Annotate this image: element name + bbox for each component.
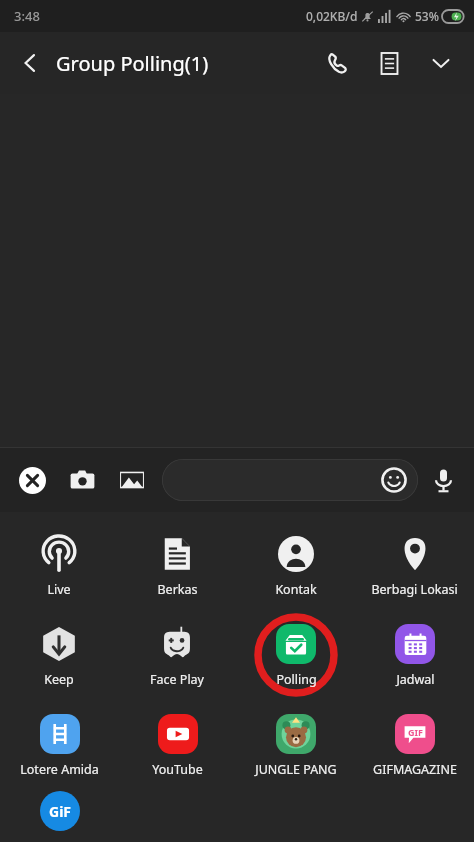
staticText: YouTube xyxy=(152,761,203,778)
staticText: Jadwal xyxy=(396,671,435,688)
button[interactable]: Call xyxy=(316,42,358,84)
button[interactable]: GIF xyxy=(355,700,474,790)
staticText: Lotere Amida xyxy=(20,761,99,778)
staticText: JUNGLE PANG xyxy=(255,761,337,778)
staticText: Polling xyxy=(276,671,317,688)
button[interactable]: Emoji xyxy=(162,459,418,501)
staticText: GIF xyxy=(408,726,423,738)
button[interactable]: Face Play xyxy=(118,610,236,700)
button[interactable]: Lotere Amida xyxy=(0,700,118,790)
button[interactable]: Berbagi Lokasi xyxy=(355,520,474,610)
staticText: Face Play xyxy=(150,671,204,688)
button[interactable]: Camera xyxy=(60,458,104,502)
button[interactable]: Gallery xyxy=(110,458,154,502)
staticText: GIFMAGAZINE xyxy=(373,761,457,778)
button[interactable]: JUNGLE PANG xyxy=(236,700,355,790)
button[interactable]: Keep xyxy=(0,610,118,700)
button[interactable]: Close xyxy=(10,458,54,502)
staticText: GiF xyxy=(49,802,72,821)
button[interactable]: Berkas xyxy=(118,520,236,610)
button[interactable]: Menu xyxy=(368,42,410,84)
staticText: Kontak xyxy=(275,581,317,598)
button[interactable]: Live xyxy=(0,520,118,610)
staticText: 3:48 xyxy=(14,7,40,25)
button[interactable]: Kontak xyxy=(236,520,355,610)
button[interactable]: Jadwal xyxy=(355,610,474,700)
staticText: Live xyxy=(47,581,71,598)
button[interactable]: Polling xyxy=(236,610,355,700)
staticText: Berkas xyxy=(157,581,198,598)
staticText: 0,02KB/d xyxy=(306,8,358,24)
staticText: Keep xyxy=(44,671,74,688)
button[interactable]: YouTube xyxy=(118,700,236,790)
button[interactable]: Emoji xyxy=(377,463,411,497)
staticText: Berbagi Lokasi xyxy=(371,581,458,598)
button[interactable]: GiF xyxy=(0,790,118,842)
button[interactable]: Back xyxy=(10,43,50,83)
staticText: 53% xyxy=(415,8,439,24)
staticText: Group Polling(1) xyxy=(56,50,209,77)
button[interactable]: Collapse xyxy=(420,42,462,84)
button[interactable]: Voice message xyxy=(422,459,464,501)
